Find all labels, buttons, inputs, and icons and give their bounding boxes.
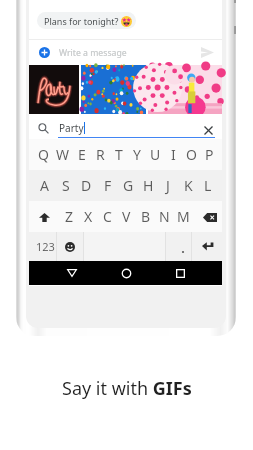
staticText: W: [56, 145, 70, 164]
button[interactable]: Clear search: [200, 122, 216, 138]
button[interactable]: [148, 65, 222, 114]
button[interactable]: P: [200, 139, 218, 170]
button[interactable]: O: [182, 139, 200, 170]
button[interactable]: Add attachment: [39, 47, 50, 58]
button[interactable]: Plans for tonight?: [37, 12, 136, 29]
staticText: X: [84, 207, 93, 226]
staticText: K: [184, 176, 193, 195]
staticText: 123: [36, 239, 55, 254]
staticText: Party: [59, 121, 84, 135]
staticText: N: [159, 207, 170, 226]
button[interactable]: L: [198, 170, 218, 201]
staticText: B: [141, 207, 151, 226]
staticText: I: [171, 145, 176, 164]
button[interactable]: M: [174, 201, 193, 232]
staticText: E: [78, 145, 86, 164]
staticText: Say it with GIFs: [62, 376, 192, 401]
staticText: O: [186, 145, 197, 164]
button[interactable]: Search: [34, 119, 53, 138]
button[interactable]: Back: [45, 261, 99, 285]
button[interactable]: F: [97, 170, 118, 201]
staticText: U: [150, 145, 161, 164]
button[interactable]: I: [164, 139, 182, 170]
button[interactable]: X: [79, 201, 98, 232]
button[interactable]: R: [91, 139, 110, 170]
button[interactable]: Recent apps: [153, 261, 207, 285]
button[interactable]: Shift: [34, 201, 59, 232]
button[interactable]: Enter: [192, 232, 218, 261]
button[interactable]: U: [146, 139, 164, 170]
button[interactable]: D: [76, 170, 97, 201]
staticText: Q: [38, 145, 49, 164]
button[interactable]: Emoji: [57, 232, 83, 261]
button[interactable]: Home: [99, 261, 153, 285]
staticText: Plans for tonight?: [44, 15, 119, 27]
button[interactable]: Send: [201, 47, 214, 58]
button[interactable]: K: [178, 170, 198, 201]
button[interactable]: B: [136, 201, 155, 232]
button[interactable]: W: [53, 139, 72, 170]
staticText: Y: [133, 145, 141, 164]
button[interactable]: Z: [59, 201, 79, 232]
staticText: F: [104, 176, 112, 195]
staticText: Write a message: [59, 47, 127, 59]
button[interactable]: Backspace: [193, 201, 218, 232]
staticText: C: [103, 207, 112, 226]
button[interactable]: A: [34, 170, 55, 201]
staticText: V: [122, 207, 131, 226]
button[interactable]: T: [110, 139, 128, 170]
button[interactable]: 123: [34, 232, 56, 261]
staticText: P: [205, 145, 214, 164]
staticText: L: [204, 176, 212, 195]
staticText: D: [81, 176, 92, 195]
button[interactable]: C: [98, 201, 117, 232]
button[interactable]: S: [55, 170, 76, 201]
button[interactable]: H: [138, 170, 158, 201]
button[interactable]: E: [72, 139, 91, 170]
staticText: T: [115, 145, 123, 164]
button[interactable]: N: [155, 201, 174, 232]
button[interactable]: J: [158, 170, 178, 201]
staticText: M: [177, 207, 190, 226]
staticText: Z: [65, 207, 74, 226]
staticText: H: [143, 176, 154, 195]
button[interactable]: G: [118, 170, 138, 201]
button[interactable]: V: [117, 201, 136, 232]
staticText: J: [166, 176, 170, 195]
button[interactable]: [81, 65, 146, 114]
button[interactable]: [166, 232, 191, 261]
button[interactable]: Y: [128, 139, 146, 170]
staticText: A: [40, 176, 49, 195]
staticText: S: [62, 176, 70, 195]
staticText: G: [123, 176, 134, 195]
button[interactable]: [29, 65, 79, 114]
button[interactable]: Q: [34, 139, 53, 170]
staticText: R: [96, 145, 105, 164]
